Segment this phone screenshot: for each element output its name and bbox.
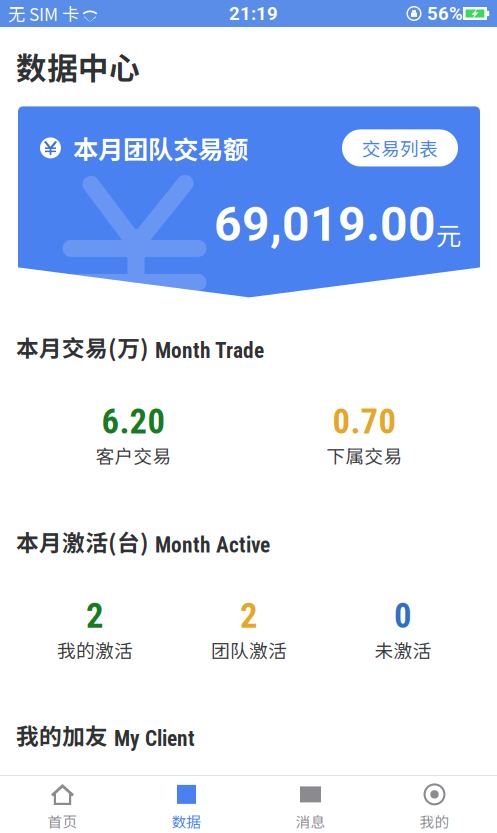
- staticText: 0: [394, 596, 412, 636]
- staticText: 6.20: [101, 401, 165, 442]
- staticText: 21:19: [229, 3, 278, 24]
- staticText: 我的: [419, 810, 449, 832]
- staticText: 本月交易(万): [16, 330, 149, 363]
- button[interactable]: 消息: [248, 780, 372, 833]
- staticText: 56%: [422, 3, 463, 24]
- staticText: 本月激活(台): [16, 525, 149, 558]
- staticText: 2: [240, 596, 258, 636]
- staticText: 数据中心: [16, 44, 140, 88]
- staticText: 数据: [171, 810, 201, 832]
- button[interactable]: 首页: [0, 780, 124, 833]
- staticText: 首页: [47, 810, 77, 832]
- staticText: 0.70: [332, 401, 396, 442]
- staticText: 我的激活: [57, 636, 133, 663]
- staticText: 本月团队交易额: [61, 130, 248, 166]
- button[interactable]: 数据: [124, 780, 248, 833]
- staticText: 下属交易: [326, 442, 402, 469]
- staticText: My Client: [114, 726, 195, 751]
- staticText: Month Trade: [155, 338, 264, 363]
- staticText: 客户交易: [95, 442, 171, 469]
- staticText: 2: [86, 596, 104, 636]
- staticText: 无 SIM 卡: [8, 1, 79, 26]
- button[interactable]: 我的: [372, 780, 496, 833]
- staticText: 元: [436, 216, 461, 252]
- button[interactable]: 交易列表: [342, 129, 458, 166]
- staticText: 69,019.00: [214, 196, 436, 252]
- staticText: 消息: [295, 810, 325, 832]
- staticText: Month Active: [155, 533, 270, 558]
- staticText: 未激活: [374, 636, 431, 663]
- staticText: 我的加友: [16, 718, 108, 751]
- staticText: 交易列表: [362, 134, 438, 161]
- staticText: 团队激活: [211, 636, 287, 663]
